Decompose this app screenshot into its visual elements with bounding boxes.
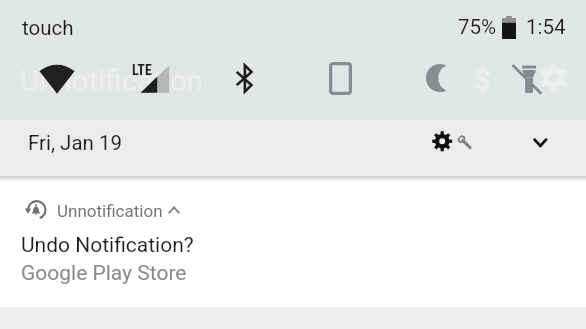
staticText: Unnotification <box>20 64 204 99</box>
staticText: Fri, Jan 19 <box>28 131 123 155</box>
staticText: $ <box>474 62 492 94</box>
button[interactable]: Flashlight off <box>510 61 544 97</box>
staticText: 75% <box>458 15 497 39</box>
staticText: Google Play Store <box>21 261 187 286</box>
staticText: touch <box>22 16 74 40</box>
button[interactable]: Settings <box>428 129 476 167</box>
button[interactable]: Auto rotate <box>329 62 352 95</box>
staticText: Undo Notification? <box>21 233 194 258</box>
button[interactable]: Do not disturb <box>426 64 445 92</box>
button[interactable]: Expand quick settings <box>527 129 554 167</box>
button[interactable]: Mobile signal LTE <box>128 62 170 94</box>
staticText: LTE <box>132 62 152 78</box>
button[interactable]: Data saver <box>474 62 492 94</box>
staticText: Unnotification <box>57 201 163 221</box>
button[interactable]: Wi-Fi <box>40 66 74 91</box>
button[interactable]: Bluetooth <box>235 64 254 93</box>
staticText: 1:54 <box>526 15 566 39</box>
button[interactable]: Settings <box>539 63 568 92</box>
button[interactable]: Unnotification <box>0 182 586 307</box>
